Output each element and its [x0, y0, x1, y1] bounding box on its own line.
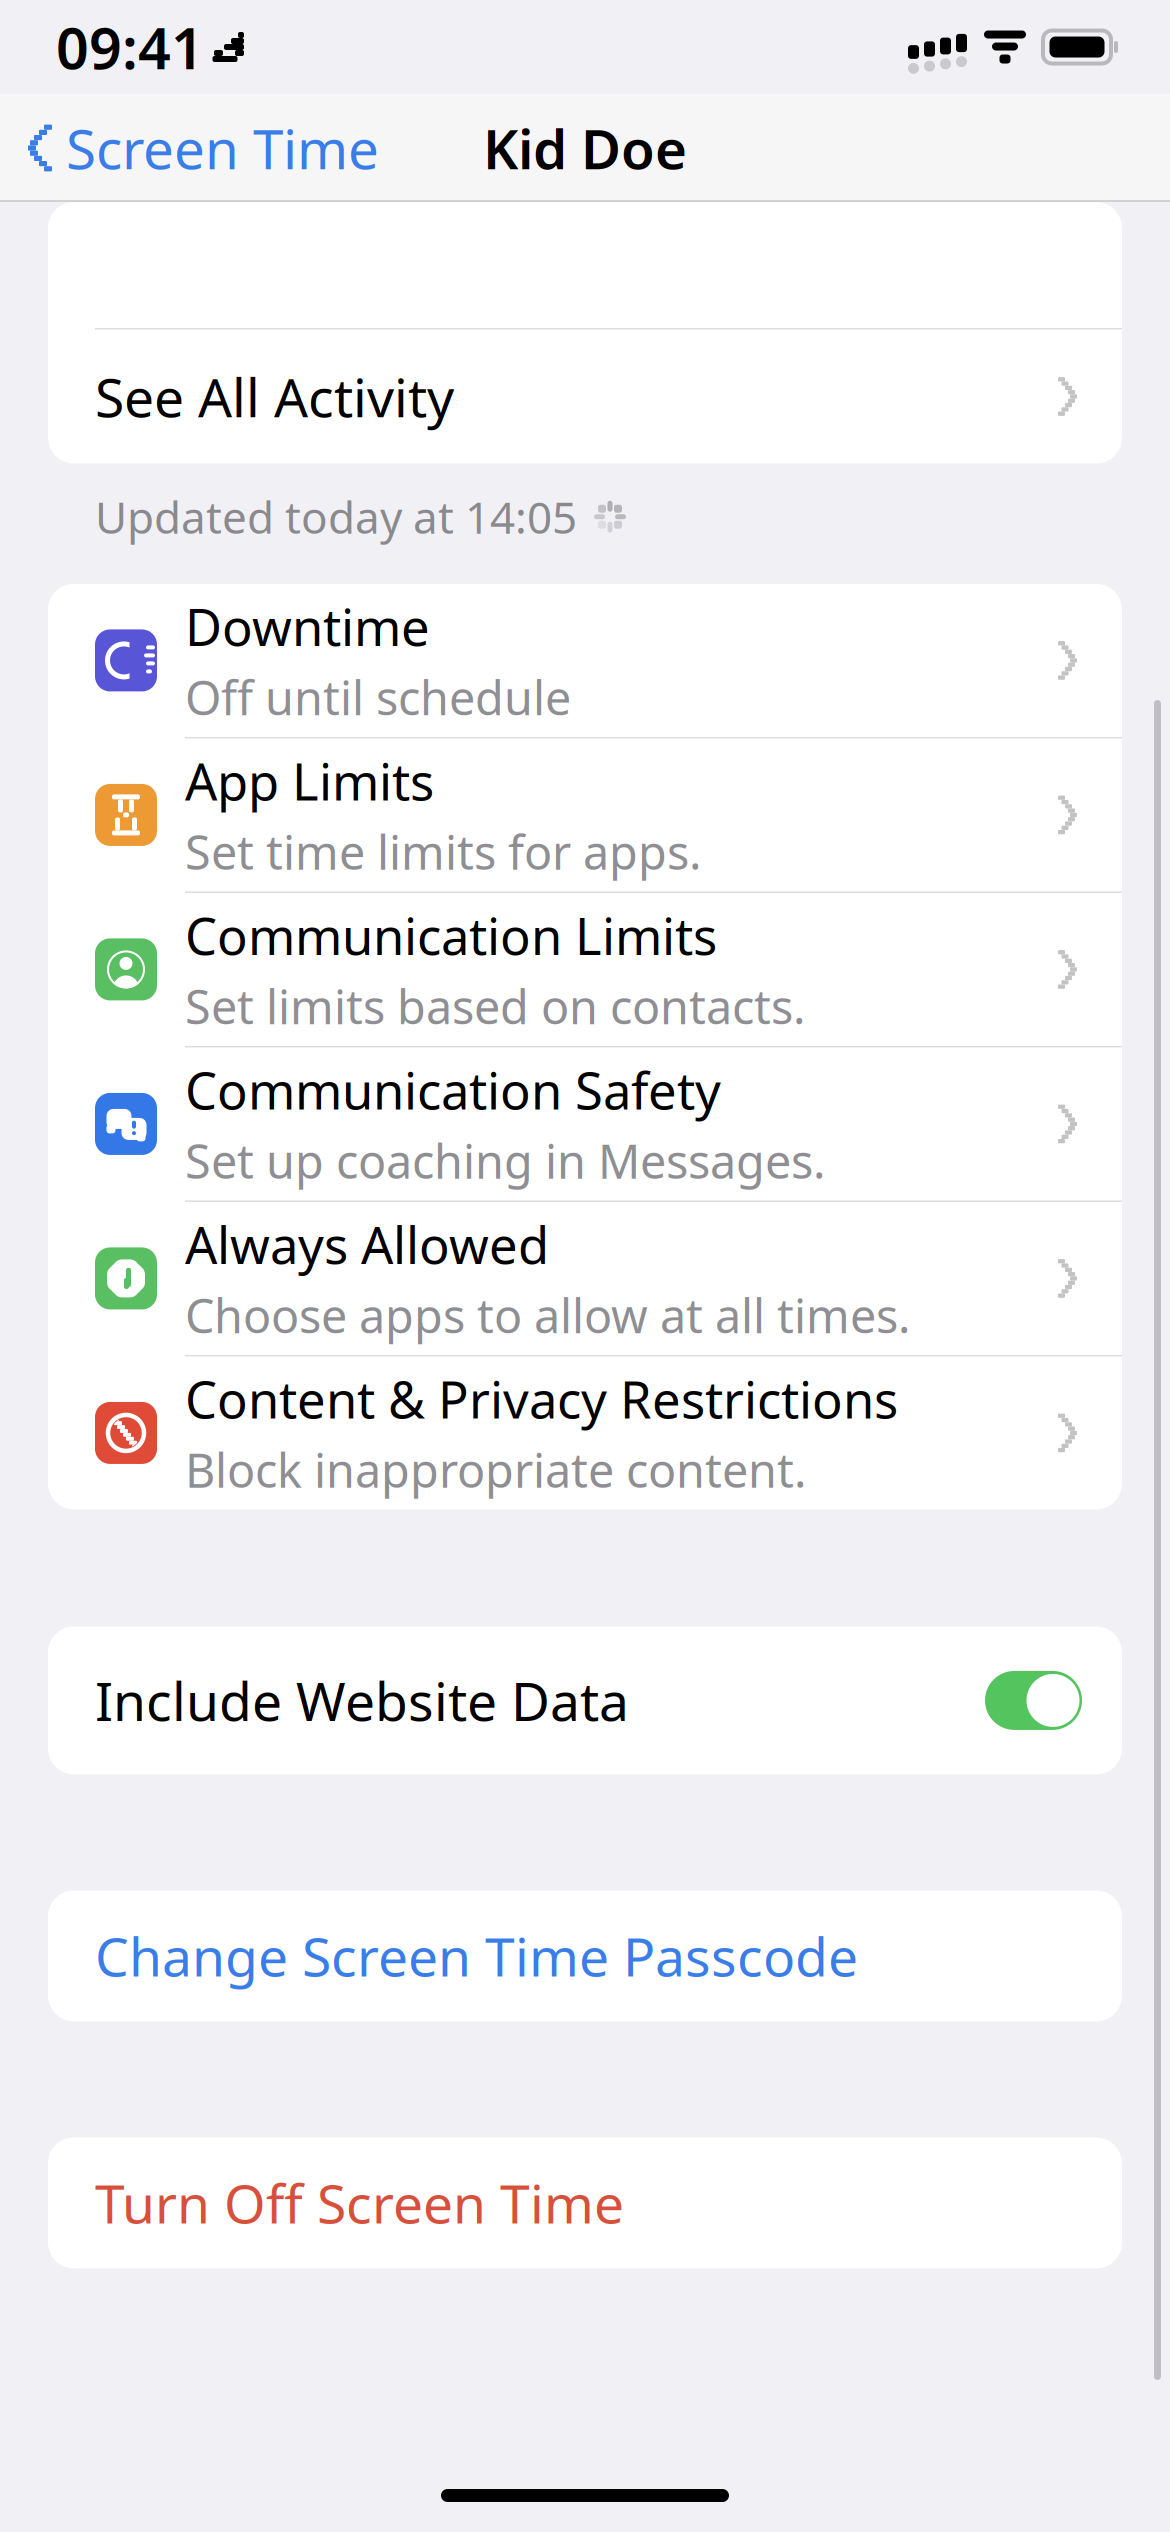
button[interactable]: Communication Limits — [48, 893, 1122, 1046]
staticText: Screen Time — [66, 112, 379, 184]
staticText: 09:41 — [56, 9, 204, 85]
button[interactable]: See All Activity — [48, 329, 1122, 463]
button[interactable]: Communication Safety — [48, 1047, 1122, 1200]
staticText: Set up coaching in Messages. — [185, 1130, 826, 1192]
staticText: Always Allowed — [185, 1211, 549, 1278]
button[interactable]: Screen Time — [0, 96, 379, 200]
button[interactable]: App Limits — [48, 738, 1122, 891]
button[interactable]: Include Website Data — [48, 1626, 1122, 1774]
staticText: App Limits — [185, 747, 434, 815]
staticText: Block inappropriate content. — [185, 1439, 807, 1501]
button[interactable]: Downtime — [48, 584, 1122, 737]
staticText: Downtime — [185, 593, 430, 660]
button[interactable]: Change Screen Time Passcode — [48, 1890, 1122, 2021]
staticText: Set limits based on contacts. — [185, 975, 806, 1037]
staticText: Kid Doe — [483, 112, 687, 184]
staticText: See All Activity — [95, 361, 454, 432]
button[interactable]: Turn Off Screen Time — [48, 2137, 1122, 2268]
staticText: Communication Limits — [185, 902, 717, 969]
staticText: Choose apps to allow at all times. — [185, 1284, 911, 1346]
staticText: Off until schedule — [185, 666, 571, 728]
staticText: Change Screen Time Passcode — [95, 1920, 858, 1991]
staticText: Content & Privacy Restrictions — [185, 1365, 898, 1433]
staticText: Updated today at 14:05 — [95, 487, 577, 546]
staticText: Communication Safety — [185, 1056, 721, 1124]
button[interactable]: Always Allowed — [48, 1202, 1122, 1355]
button[interactable]: Content & Privacy Restrictions — [48, 1356, 1122, 1509]
staticText: Turn Off Screen Time — [95, 2167, 624, 2238]
staticText: Include Website Data — [95, 1665, 629, 1736]
staticText: Set time limits for apps. — [185, 821, 702, 883]
